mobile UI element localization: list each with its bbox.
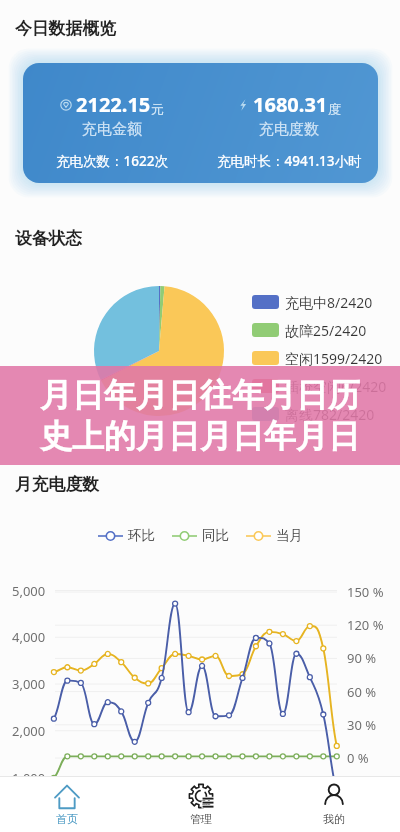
staticText: 5,000	[12, 582, 46, 600]
staticText: 30 %	[347, 716, 377, 734]
other: 首页	[54, 783, 80, 809]
button[interactable]: 2122.15	[23, 63, 378, 183]
staticText: 史上的月日月日年月日	[40, 416, 360, 456]
staticText: 同比	[202, 527, 229, 544]
staticText: 充电中8/2420	[285, 293, 373, 312]
staticText: 管理	[190, 812, 212, 826]
staticText: 今日数据概览	[15, 18, 116, 39]
staticText: 元	[151, 101, 164, 117]
staticText: 空闲1599/2420	[285, 349, 383, 368]
staticText: 环比	[128, 527, 155, 544]
staticText: 当月	[276, 527, 303, 544]
staticText: 插枪空闲6/2420	[285, 377, 387, 396]
staticText: 设备状态	[15, 228, 83, 249]
staticText: 我的	[323, 812, 345, 826]
staticText: 0 %	[347, 749, 369, 767]
staticText: 首页	[56, 812, 78, 826]
button[interactable]: 首页	[0, 777, 134, 832]
staticText: 月日年月日往年月日历	[40, 375, 360, 415]
staticText: 1,000	[12, 769, 46, 787]
button[interactable]: 我的	[267, 777, 400, 832]
button[interactable]: 管理	[134, 777, 267, 832]
staticText: 90 %	[347, 649, 377, 667]
staticText: 故障25/2420	[285, 321, 367, 340]
staticText: 120 %	[347, 616, 384, 634]
staticText: 充电次数：1622次	[56, 152, 168, 170]
staticText: 150 %	[347, 583, 384, 601]
other: 我的	[321, 783, 347, 809]
other: 管理	[188, 783, 214, 809]
staticText: 充电金额	[82, 120, 142, 139]
staticText: 4,000	[12, 628, 46, 646]
staticText: 3,000	[12, 675, 46, 693]
staticText: 60 %	[347, 683, 377, 701]
staticText: 2122.15	[76, 91, 151, 118]
staticText: 度	[328, 101, 341, 117]
staticText: 充电度数	[259, 120, 319, 139]
staticText: 2,000	[12, 722, 46, 740]
staticText: 1680.31	[253, 91, 328, 118]
staticText: 充电时长：4941.13小时	[217, 152, 362, 170]
staticText: 月充电度数	[15, 474, 99, 495]
staticText: 离线782/2420	[285, 405, 375, 424]
